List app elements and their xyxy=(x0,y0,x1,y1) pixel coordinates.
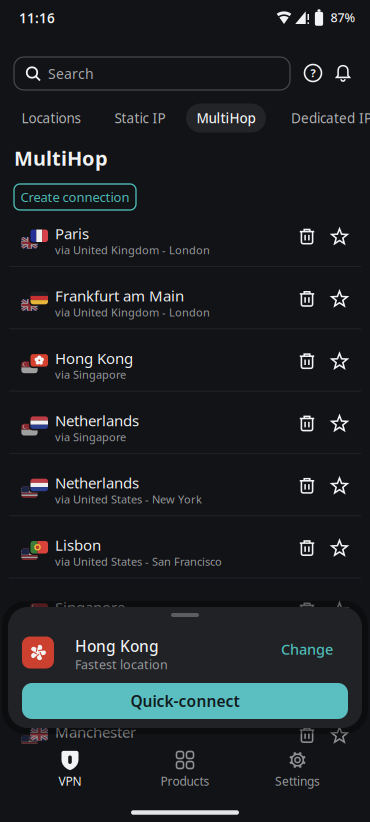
button[interactable]: Lisbon xyxy=(0,528,370,591)
staticText: 87% xyxy=(330,9,355,26)
button[interactable]: ? xyxy=(299,59,327,87)
button[interactable] xyxy=(330,477,348,495)
button[interactable]: Paris xyxy=(0,217,370,280)
button[interactable] xyxy=(299,727,315,743)
button[interactable] xyxy=(329,59,357,87)
staticText: via Singapore xyxy=(55,429,126,444)
button[interactable]: VPN xyxy=(15,737,125,803)
button[interactable]: Netherlands xyxy=(0,404,370,467)
button[interactable]: Frankfurt am Main xyxy=(0,279,370,342)
staticText: MultiHop xyxy=(14,144,108,172)
staticText: Paris xyxy=(55,223,89,244)
staticText: Dedicated IP xyxy=(291,109,370,127)
staticText: via United Kingdom - London xyxy=(55,305,210,320)
staticText: Change xyxy=(281,639,333,659)
button[interactable] xyxy=(330,539,348,557)
button[interactable]: Static IP xyxy=(102,103,178,133)
staticText: VPN xyxy=(58,773,81,789)
staticText: Fastest location xyxy=(75,656,168,673)
staticText: Netherlands xyxy=(55,472,139,493)
button[interactable]: Singapore xyxy=(0,591,370,654)
button[interactable] xyxy=(330,726,348,744)
button[interactable] xyxy=(299,291,315,307)
staticText: via United States - New York xyxy=(55,492,202,507)
staticText: Singapore xyxy=(55,597,125,617)
button[interactable]: Change xyxy=(272,634,342,664)
button[interactable] xyxy=(299,540,315,556)
button[interactable]: Locations xyxy=(11,103,91,133)
button[interactable]: Products xyxy=(130,737,240,803)
staticText: via Singapore xyxy=(55,367,126,382)
button[interactable]: Netherlands xyxy=(0,466,370,529)
staticText: Locations xyxy=(21,109,80,127)
staticText: via United Kingdom - London xyxy=(55,242,210,257)
button[interactable] xyxy=(299,478,315,494)
button[interactable]: Settings xyxy=(242,737,352,803)
button[interactable]: MultiHop xyxy=(186,103,266,132)
staticText: via France - Paris xyxy=(55,741,143,756)
staticText: Static IP xyxy=(114,109,165,127)
button[interactable]: Search xyxy=(14,57,290,90)
staticText: Create connection xyxy=(20,188,129,206)
staticText: MultiHop xyxy=(196,109,255,127)
button[interactable]: Manchester xyxy=(0,715,370,778)
button[interactable] xyxy=(330,290,348,308)
button[interactable] xyxy=(330,601,348,619)
staticText: Manchester xyxy=(55,722,136,742)
staticText: Lisbon xyxy=(55,535,101,555)
button[interactable] xyxy=(330,352,348,370)
button[interactable] xyxy=(299,228,315,244)
button[interactable] xyxy=(330,227,348,245)
staticText: Products xyxy=(160,773,209,789)
staticText: Frankfurt am Main xyxy=(55,286,184,306)
button[interactable] xyxy=(299,602,315,618)
button[interactable]: Dedicated IP xyxy=(291,103,370,133)
button[interactable]: Hong Kong xyxy=(0,342,370,405)
staticText: Hong Kong xyxy=(75,635,159,656)
staticText: Hong Kong xyxy=(55,348,133,368)
staticText: Settings xyxy=(275,773,320,789)
button[interactable] xyxy=(299,353,315,369)
staticText: Netherlands xyxy=(55,410,139,431)
staticText: Quick-connect xyxy=(130,690,239,711)
staticText: via United States - San Francisco xyxy=(55,554,222,569)
staticText: ? xyxy=(310,65,315,80)
button[interactable] xyxy=(299,415,315,431)
button[interactable]: Quick-connect xyxy=(22,683,348,719)
staticText: 11:16 xyxy=(19,9,55,27)
button[interactable]: Create connection xyxy=(14,184,136,210)
staticText: Search xyxy=(48,64,94,83)
button[interactable] xyxy=(330,414,348,432)
